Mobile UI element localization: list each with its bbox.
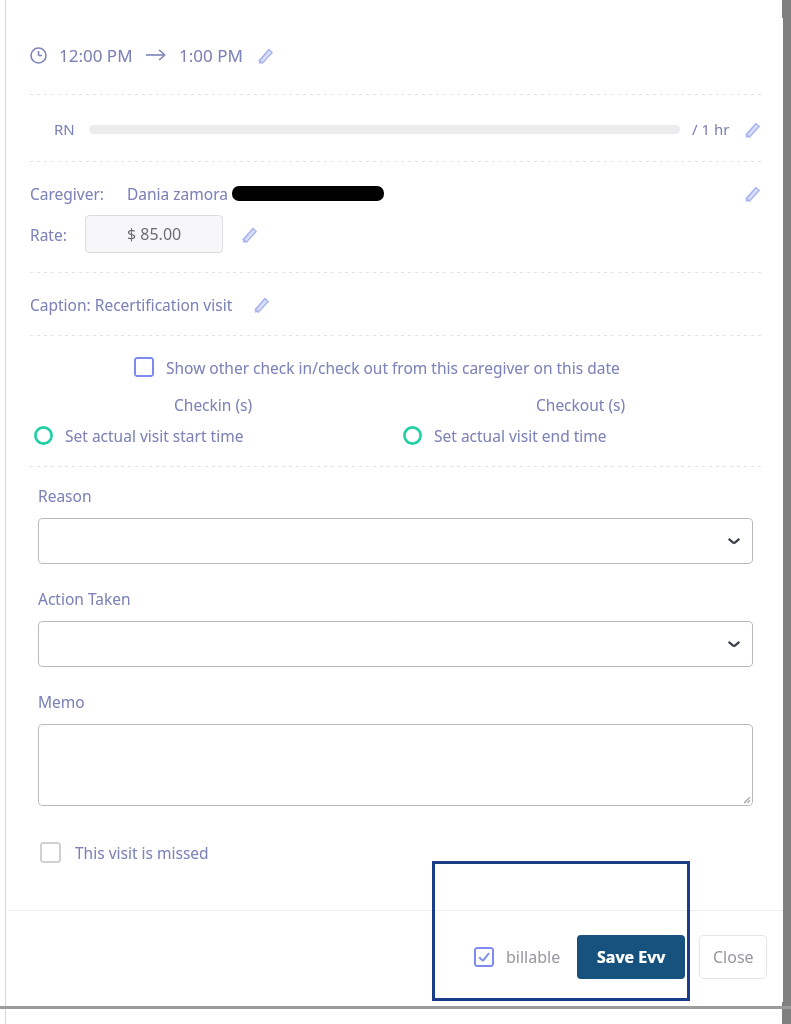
staticText: Set actual visit end time	[434, 425, 607, 446]
staticText: Reason	[38, 485, 92, 506]
button[interactable]: This visit is missed	[40, 838, 209, 866]
button[interactable]	[38, 518, 753, 564]
staticText: $ 85.00	[127, 223, 182, 245]
button[interactable]	[38, 621, 753, 667]
button[interactable]: billable	[474, 946, 561, 968]
button[interactable]: Edit time	[253, 43, 278, 68]
staticText: This visit is missed	[75, 842, 209, 863]
staticText: Show other check in/check out from this …	[166, 357, 620, 378]
button[interactable]: Edit caption	[249, 292, 274, 317]
staticText: 12:00 PM	[59, 44, 133, 67]
staticText: billable	[506, 946, 561, 968]
button[interactable]: Edit hours	[740, 117, 765, 141]
staticText: Checkout (s)	[536, 394, 626, 415]
staticText: Caption: Recertification visit	[30, 294, 233, 315]
staticText: Dania zamora	[127, 183, 228, 204]
staticText: Save Evv	[597, 946, 666, 968]
staticText: 1:00 PM	[179, 44, 243, 67]
staticText: Checkin (s)	[174, 394, 253, 415]
button[interactable]: Edit rate	[237, 222, 262, 247]
staticText: Memo	[38, 691, 85, 712]
staticText: Close	[713, 946, 754, 968]
button[interactable]: Set actual visit start time	[30, 425, 397, 446]
staticText: Caregiver:	[30, 183, 105, 204]
staticText: Action Taken	[38, 588, 131, 609]
button[interactable]: Edit caregiver	[740, 181, 765, 206]
button[interactable]: Save Evv	[577, 935, 685, 979]
staticText: Rate:	[30, 224, 67, 245]
button[interactable]	[38, 724, 753, 806]
button[interactable]: Show other check in/check out from this …	[134, 354, 620, 380]
button[interactable]: Set actual visit end time	[397, 425, 765, 446]
button[interactable]: $ 85.00	[85, 215, 223, 253]
staticText: RN	[54, 119, 75, 139]
staticText: / 1 hr	[692, 119, 730, 139]
button[interactable]: Close	[699, 935, 767, 979]
staticText: Set actual visit start time	[65, 425, 244, 446]
